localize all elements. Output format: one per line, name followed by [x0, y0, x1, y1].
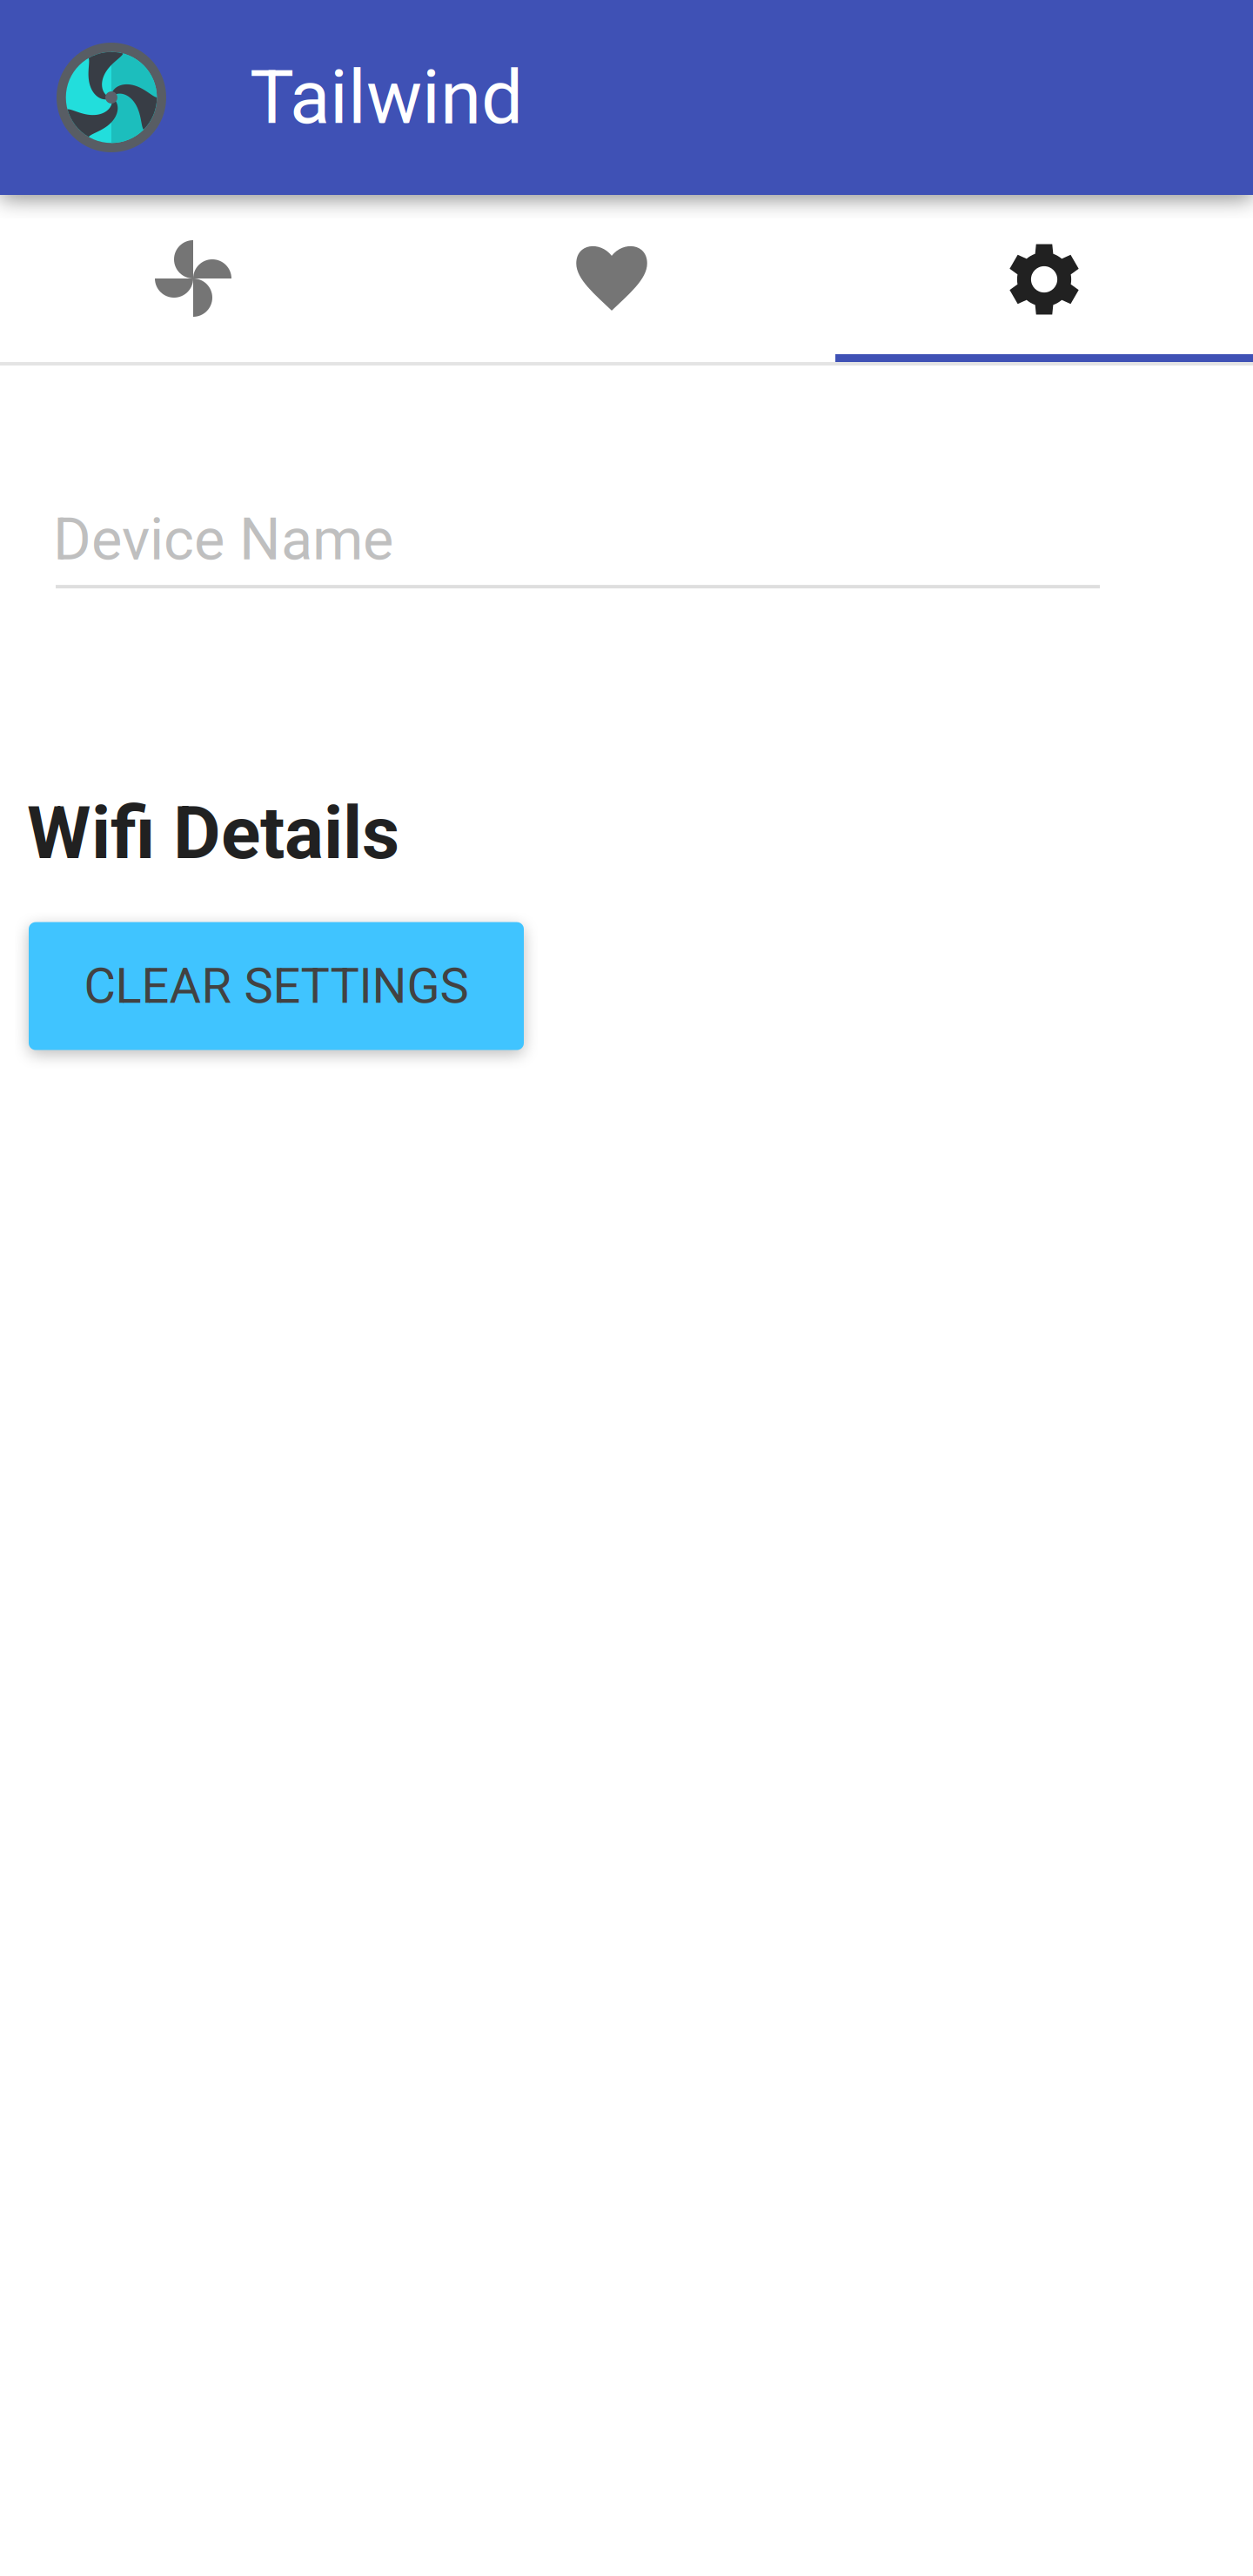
- button[interactable]: Settings: [835, 195, 1253, 366]
- staticText: Wifi Details: [27, 790, 399, 876]
- staticText: CLEAR SETTINGS: [84, 958, 469, 1015]
- staticText: Device Name: [53, 506, 393, 574]
- button[interactable]: Fan: [0, 195, 418, 366]
- button[interactable]: CLEAR SETTINGS: [29, 922, 524, 1050]
- button[interactable]: Favourites: [418, 195, 835, 366]
- staticText: Tailwind: [250, 54, 523, 141]
